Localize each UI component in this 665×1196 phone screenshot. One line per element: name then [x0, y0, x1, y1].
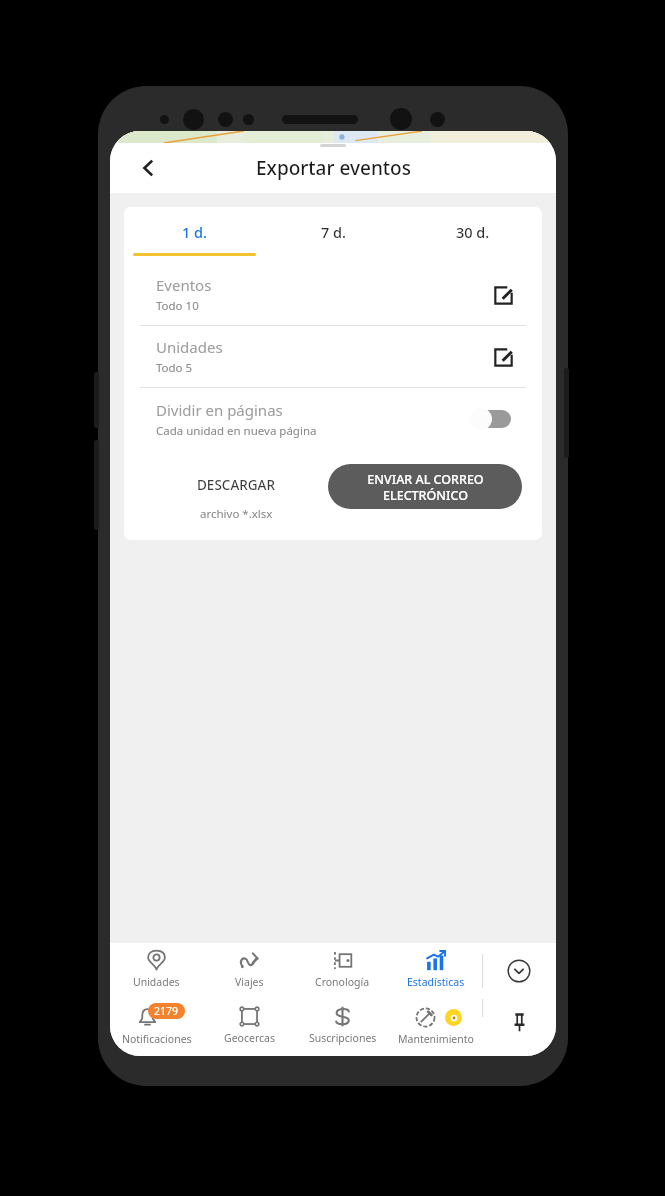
button[interactable]: 30 d.	[403, 207, 542, 264]
staticText: Estadísticas	[407, 975, 465, 989]
button[interactable]: Pin	[502, 1005, 536, 1039]
staticText: Cronología	[315, 975, 370, 989]
button[interactable]: Dividir en páginas toggle	[470, 406, 516, 432]
staticText: Suscripciones	[309, 1031, 377, 1045]
staticText: 30 d.	[456, 222, 490, 242]
button[interactable]: Unidades	[124, 326, 542, 387]
staticText: Unidades	[156, 337, 223, 357]
staticText: Exportar eventos	[256, 155, 411, 181]
button[interactable]: Back	[132, 152, 164, 184]
staticText: Dividir en páginas	[156, 400, 283, 420]
staticText: Unidades	[133, 975, 180, 989]
staticText: ENVIAR AL CORREO ELECTRÓNICO	[367, 471, 484, 503]
button[interactable]: Edit Eventos	[486, 278, 520, 312]
staticText: Todo 5	[156, 360, 193, 376]
button[interactable]: 2179	[110, 999, 203, 1056]
button[interactable]: 1 d.	[124, 207, 264, 264]
button[interactable]: Geocercas	[203, 999, 296, 1056]
staticText: 1 d.	[182, 222, 207, 242]
button[interactable]: Cronología	[296, 943, 389, 999]
button[interactable]: Edit Unidades	[486, 340, 520, 374]
button[interactable]: Suscripciones	[296, 999, 389, 1056]
button[interactable]: Estadísticas	[389, 943, 482, 999]
staticText: 7 d.	[321, 222, 346, 242]
staticText: Eventos	[156, 275, 212, 295]
staticText: Mantenimiento	[398, 1032, 474, 1046]
staticText: DESCARGAR	[197, 476, 275, 494]
staticText: Cada unidad en nueva página	[156, 423, 317, 439]
button[interactable]: Viajes	[203, 943, 296, 999]
button[interactable]: DESCARGAR	[144, 464, 328, 522]
button[interactable]: Expand	[500, 952, 538, 990]
staticText: Todo 10	[156, 298, 199, 314]
staticText: Geocercas	[224, 1031, 275, 1045]
button[interactable]: Unidades	[110, 943, 203, 999]
button[interactable]: ENVIAR AL CORREO ELECTRÓNICO	[328, 464, 522, 509]
staticText: Notificaciones	[122, 1032, 192, 1046]
button[interactable]: Mantenimiento	[389, 999, 482, 1056]
staticText: Viajes	[235, 975, 264, 989]
button[interactable]: 7 d.	[264, 207, 403, 264]
staticText: 2179	[154, 1004, 179, 1018]
button[interactable]: Eventos	[124, 264, 542, 325]
button[interactable]: Dividir en páginas	[124, 388, 542, 450]
staticText: archivo *.xlsx	[200, 506, 273, 522]
